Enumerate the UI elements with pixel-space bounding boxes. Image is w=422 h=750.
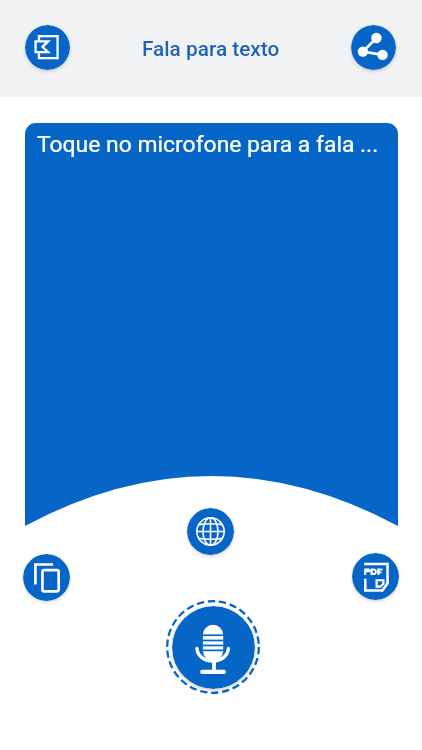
button[interactable]: Copy <box>23 554 70 601</box>
button[interactable]: Export PDF <box>352 553 399 600</box>
staticText: Fala para texto <box>142 37 280 61</box>
staticText: Toque no microfone para a fala ... <box>37 131 379 158</box>
button[interactable]: Share <box>351 25 396 70</box>
button[interactable]: Exit <box>25 25 70 70</box>
button[interactable]: Language <box>187 508 234 555</box>
button[interactable]: Microphone <box>166 600 260 694</box>
